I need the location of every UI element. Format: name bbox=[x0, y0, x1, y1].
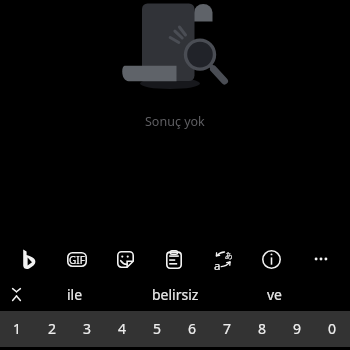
button[interactable]: 6 bbox=[175, 311, 210, 347]
staticText: 7 bbox=[223, 319, 232, 338]
staticText: あ bbox=[225, 250, 234, 260]
button[interactable]: ile bbox=[25, 282, 125, 311]
button[interactable]: belirsiz bbox=[125, 282, 225, 311]
button[interactable]: Bing search bbox=[5, 236, 53, 282]
button[interactable]: Translate bbox=[198, 236, 247, 282]
button[interactable]: Collapse toolbar bbox=[0, 282, 25, 311]
button[interactable]: 0 bbox=[315, 311, 350, 347]
staticText: 2 bbox=[48, 319, 57, 338]
staticText: Sonuç yok bbox=[145, 113, 205, 130]
button[interactable]: Clipboard bbox=[149, 236, 198, 282]
button[interactable]: Info bbox=[247, 236, 296, 282]
staticText: GIF bbox=[69, 253, 85, 267]
button[interactable]: 5 bbox=[140, 311, 175, 347]
staticText: 8 bbox=[258, 319, 267, 338]
button[interactable]: GIF bbox=[53, 236, 101, 282]
staticText: 0 bbox=[328, 319, 337, 338]
staticText: 4 bbox=[118, 319, 127, 338]
staticText: 1 bbox=[13, 319, 22, 338]
button[interactable]: 8 bbox=[245, 311, 280, 347]
button[interactable]: 1 bbox=[0, 311, 35, 347]
staticText: 9 bbox=[293, 319, 302, 338]
button[interactable]: More options bbox=[296, 236, 345, 282]
staticText: belirsiz bbox=[152, 285, 199, 304]
staticText: 5 bbox=[153, 319, 162, 338]
staticText: 3 bbox=[83, 319, 92, 338]
button[interactable]: 7 bbox=[210, 311, 245, 347]
staticText: ve bbox=[267, 285, 283, 304]
staticText: ile bbox=[67, 285, 83, 304]
button[interactable]: 3 bbox=[70, 311, 105, 347]
button[interactable]: ve bbox=[225, 282, 325, 311]
button[interactable]: 9 bbox=[280, 311, 315, 347]
staticText: 6 bbox=[188, 319, 197, 338]
staticText: a bbox=[214, 258, 221, 274]
button[interactable]: Stickers bbox=[101, 236, 149, 282]
button[interactable]: 2 bbox=[35, 311, 70, 347]
button[interactable]: 4 bbox=[105, 311, 140, 347]
